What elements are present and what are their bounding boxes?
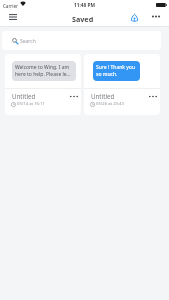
staticText: Saved bbox=[72, 14, 94, 24]
staticText: 05/14 at 16:11 bbox=[17, 101, 45, 107]
staticText: 11:48 PM bbox=[74, 2, 96, 9]
button[interactable]: Conversation options bbox=[67, 92, 81, 101]
staticText: 05/26 at 23:43 bbox=[96, 101, 124, 107]
button[interactable]: Welcome to Wing. I am here to help. Plea… bbox=[5, 54, 81, 115]
staticText: Welcome to Wing. I am here to help. Plea… bbox=[15, 64, 73, 78]
staticText: Untitled bbox=[91, 92, 115, 100]
staticText: Untitled bbox=[12, 92, 36, 100]
button[interactable]: Sure ! Thank you so much. bbox=[84, 54, 160, 115]
staticText: Search bbox=[20, 38, 36, 45]
staticText: Carrier bbox=[3, 3, 18, 9]
button[interactable]: More options bbox=[146, 10, 166, 23]
button[interactable]: Search bbox=[2, 31, 161, 50]
staticText: Sure ! Thank you so much. bbox=[96, 64, 137, 78]
button[interactable]: Menu bbox=[2, 10, 23, 23]
button[interactable]: Wing assistant bbox=[126, 11, 143, 24]
button[interactable]: Conversation options bbox=[146, 92, 160, 101]
